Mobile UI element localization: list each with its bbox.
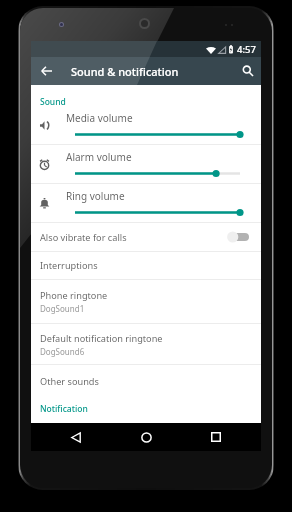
- staticText: DogSound6: [40, 346, 85, 357]
- staticText: Media volume: [66, 111, 133, 125]
- button[interactable]: Default notification ringtone: [31, 324, 261, 364]
- button[interactable]: Also vibrate for calls: [31, 223, 261, 251]
- staticText: Also vibrate for calls: [40, 231, 127, 244]
- staticText: Notification: [40, 403, 88, 415]
- button[interactable]: Alarm volume: [31, 145, 261, 183]
- button[interactable]: Interruptions: [31, 252, 261, 279]
- button[interactable]: Ring volume: [31, 184, 261, 222]
- button[interactable]: Search: [235, 58, 261, 84]
- staticText: Sound & notification: [71, 64, 179, 79]
- button[interactable]: Back: [36, 57, 266, 85]
- button[interactable]: Back: [61, 423, 90, 451]
- staticText: Sound: [40, 96, 66, 108]
- staticText: Interruptions: [40, 259, 98, 272]
- staticText: DogSound1: [40, 303, 85, 314]
- staticText: Ring volume: [66, 189, 125, 203]
- button[interactable]: Home: [131, 423, 161, 451]
- staticText: Phone ringtone: [40, 289, 108, 302]
- button[interactable]: Media volume: [31, 106, 261, 144]
- button[interactable]: Other sounds: [31, 365, 261, 398]
- staticText: Other sounds: [40, 375, 99, 388]
- button[interactable]: Phone ringtone: [31, 280, 261, 323]
- staticText: Alarm volume: [66, 150, 132, 164]
- button[interactable]: Recent apps: [201, 423, 231, 451]
- staticText: 4:57: [237, 43, 256, 56]
- staticText: Default notification ringtone: [40, 332, 163, 345]
